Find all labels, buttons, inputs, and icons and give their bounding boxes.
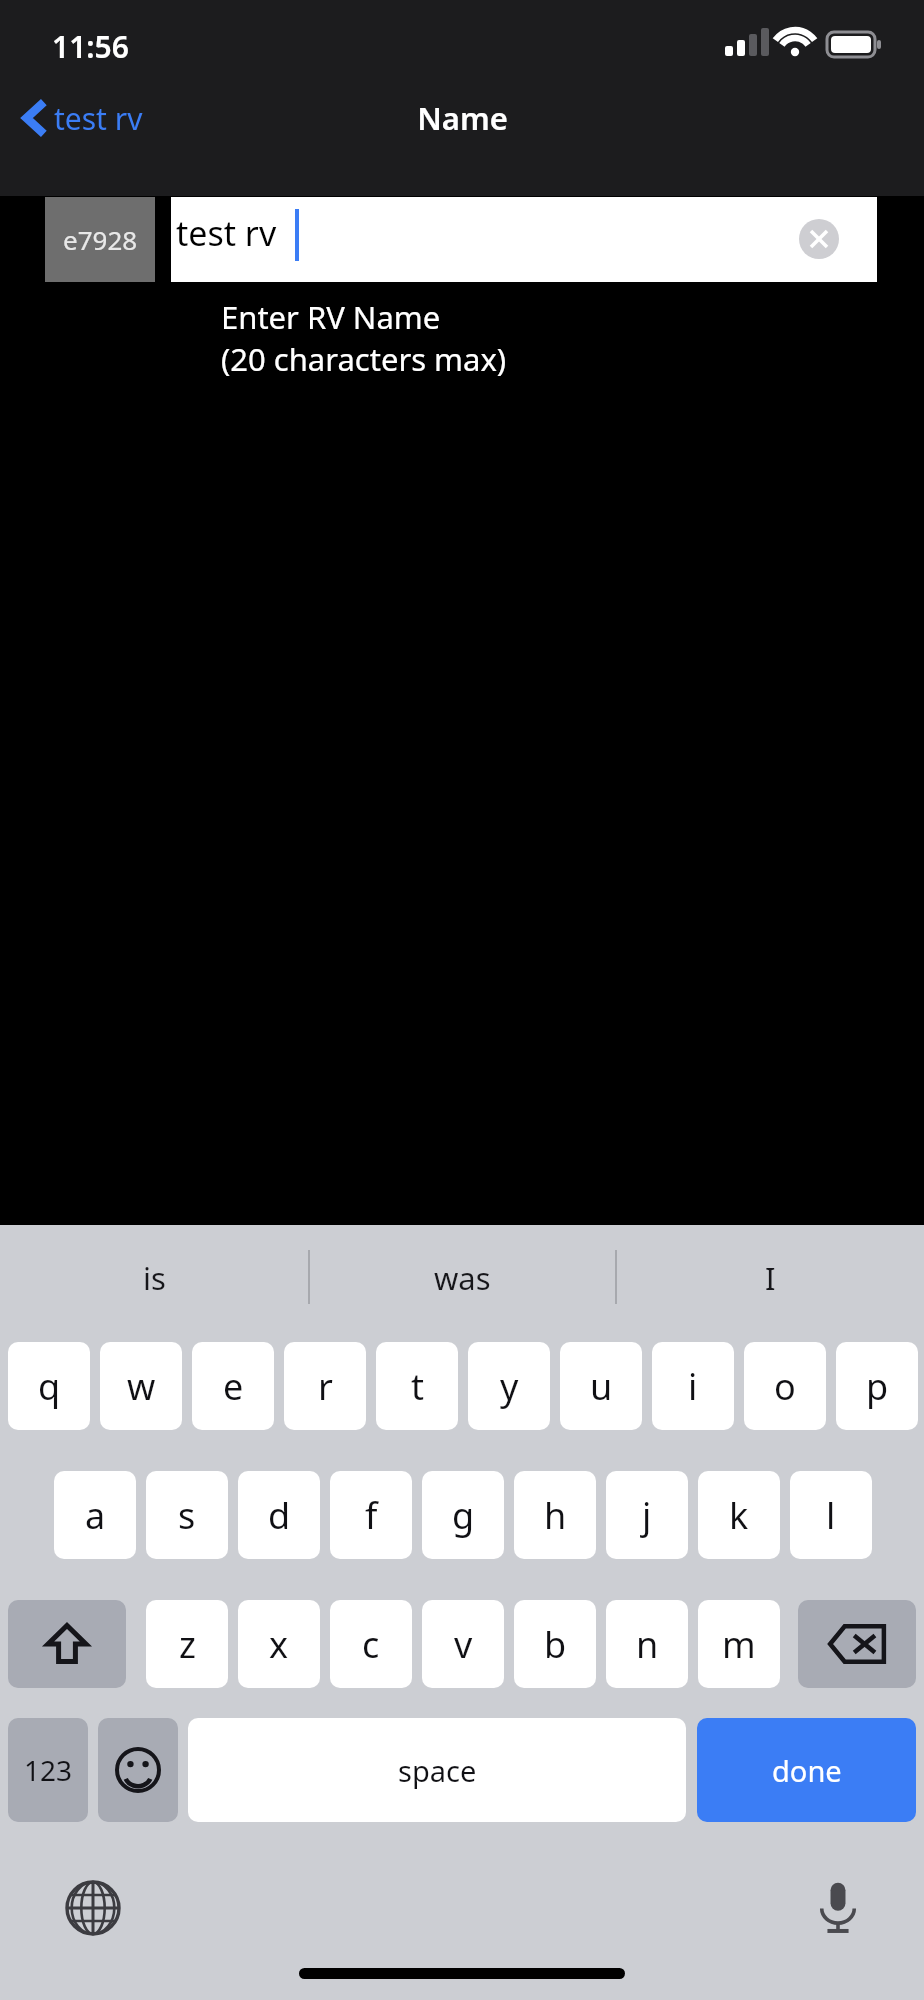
button[interactable]: i: [652, 1342, 734, 1430]
button[interactable]: h: [514, 1471, 596, 1559]
staticText: w: [127, 1362, 156, 1411]
button[interactable]: c: [330, 1600, 412, 1688]
button[interactable]: z: [146, 1600, 228, 1688]
button[interactable]: y: [468, 1342, 550, 1430]
button[interactable]: is: [14, 1240, 294, 1316]
button[interactable]: Emoji: [98, 1718, 178, 1822]
button[interactable]: w: [100, 1342, 182, 1430]
button[interactable]: n: [606, 1600, 688, 1688]
staticText: l: [826, 1491, 836, 1540]
button[interactable]: r: [284, 1342, 366, 1430]
button[interactable]: I: [630, 1240, 910, 1316]
staticText: s: [178, 1491, 196, 1540]
staticText: f: [365, 1491, 378, 1540]
button[interactable]: Shift: [8, 1600, 126, 1688]
staticText: done: [772, 1751, 842, 1790]
button[interactable]: f: [330, 1471, 412, 1559]
button[interactable]: o: [744, 1342, 826, 1430]
staticText: b: [544, 1620, 567, 1669]
button[interactable]: g: [422, 1471, 504, 1559]
staticText: q: [38, 1362, 61, 1411]
staticText: r: [318, 1362, 333, 1411]
staticText: o: [774, 1362, 796, 1411]
staticText: g: [452, 1491, 475, 1540]
staticText: n: [636, 1620, 659, 1669]
button[interactable]: space: [188, 1718, 686, 1822]
staticText: c: [362, 1620, 380, 1669]
button[interactable]: test rv: [171, 197, 877, 282]
staticText: I: [765, 1257, 776, 1299]
staticText: k: [729, 1491, 749, 1540]
staticText: h: [544, 1491, 567, 1540]
staticText: e7928: [63, 222, 138, 257]
staticText: 123: [24, 1751, 73, 1789]
button[interactable]: t: [376, 1342, 458, 1430]
button[interactable]: s: [146, 1471, 228, 1559]
button[interactable]: k: [698, 1471, 780, 1559]
button[interactable]: Backspace: [798, 1600, 916, 1688]
button[interactable]: a: [54, 1471, 136, 1559]
staticText: test rv: [176, 210, 277, 256]
button[interactable]: d: [238, 1471, 320, 1559]
staticText: Name: [417, 97, 508, 139]
staticText: (20 characters max): [221, 338, 507, 380]
button[interactable]: v: [422, 1600, 504, 1688]
button[interactable]: Dictation: [798, 1868, 878, 1948]
staticText: z: [179, 1620, 196, 1669]
staticText: m: [722, 1620, 756, 1669]
staticText: Enter RV Name: [221, 296, 441, 338]
button[interactable]: done: [697, 1718, 916, 1822]
button[interactable]: m: [698, 1600, 780, 1688]
staticText: x: [269, 1620, 289, 1669]
staticText: test rv: [54, 98, 143, 139]
staticText: t: [411, 1362, 424, 1411]
button[interactable]: e: [192, 1342, 274, 1430]
button[interactable]: j: [606, 1471, 688, 1559]
staticText: j: [642, 1491, 652, 1540]
button[interactable]: p: [836, 1342, 918, 1430]
staticText: v: [454, 1620, 473, 1669]
button[interactable]: x: [238, 1600, 320, 1688]
button[interactable]: test rv: [14, 88, 174, 148]
button[interactable]: Change keyboard: [53, 1868, 133, 1948]
staticText: space: [398, 1751, 477, 1790]
staticText: 11:56: [52, 26, 129, 67]
staticText: e: [223, 1362, 244, 1411]
button[interactable]: b: [514, 1600, 596, 1688]
staticText: a: [85, 1491, 106, 1540]
button[interactable]: was: [322, 1240, 602, 1316]
staticText: d: [268, 1491, 291, 1540]
staticText: y: [500, 1362, 519, 1411]
staticText: is: [143, 1257, 166, 1299]
button[interactable]: Clear text: [799, 219, 839, 259]
staticText: u: [590, 1362, 613, 1411]
staticText: was: [434, 1257, 491, 1299]
button[interactable]: q: [8, 1342, 90, 1430]
staticText: p: [866, 1362, 889, 1411]
staticText: i: [688, 1362, 698, 1411]
button[interactable]: l: [790, 1471, 872, 1559]
button[interactable]: 123: [8, 1718, 88, 1822]
button[interactable]: u: [560, 1342, 642, 1430]
